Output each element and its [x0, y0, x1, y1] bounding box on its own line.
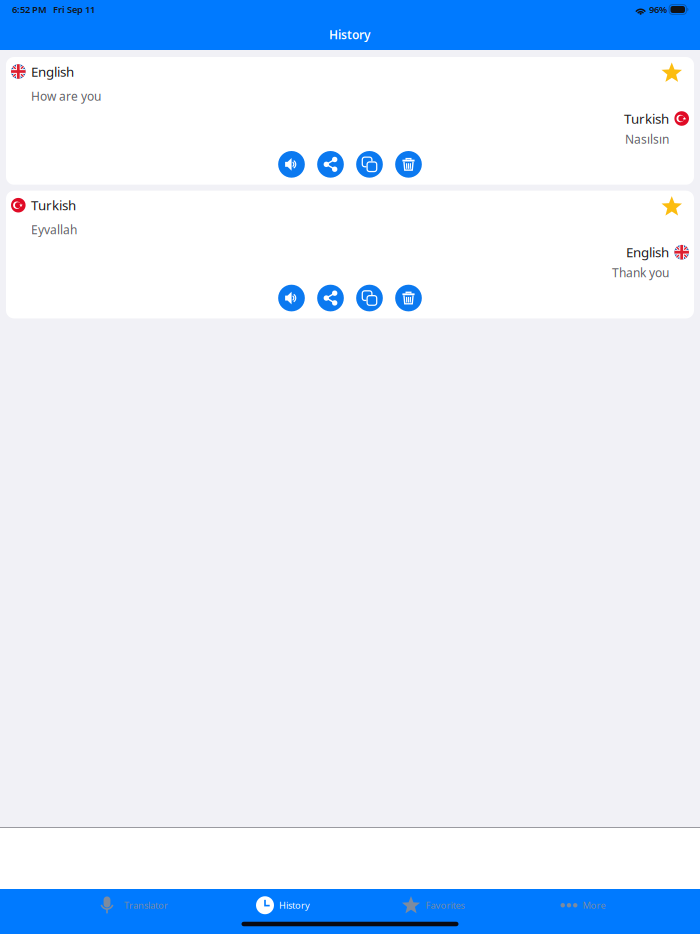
button[interactable]: Copy — [356, 285, 383, 311]
button[interactable]: Play pronunciation — [278, 285, 305, 311]
staticText: Favorites — [425, 899, 464, 911]
staticText: History — [279, 899, 310, 911]
staticText: More — [582, 899, 605, 911]
button[interactable]: History — [208, 889, 358, 922]
staticText: Turkish — [624, 110, 669, 127]
button[interactable]: Copy — [356, 151, 383, 178]
button[interactable]: Favorites — [358, 889, 508, 922]
button[interactable]: Share — [317, 151, 344, 178]
button[interactable]: Favorite — [651, 191, 694, 224]
staticText: Eyvallah — [31, 222, 77, 238]
staticText: How are you — [31, 88, 101, 104]
button[interactable]: More — [508, 889, 658, 922]
button[interactable]: Delete — [395, 151, 422, 178]
staticText: English — [626, 243, 669, 261]
staticText: Thank you — [612, 265, 669, 281]
button[interactable]: Favorite — [651, 57, 694, 90]
staticText: 96% — [649, 3, 667, 16]
staticText: 6:52 PM — [12, 3, 47, 16]
button[interactable]: Delete — [395, 285, 422, 311]
staticText: History — [329, 26, 371, 42]
staticText: Translator — [124, 899, 168, 911]
staticText: Nasılsın — [625, 131, 669, 147]
staticText: Turkish — [31, 196, 76, 214]
button[interactable]: Translator — [58, 889, 208, 922]
staticText: English — [31, 63, 74, 80]
button[interactable]: Play pronunciation — [278, 151, 305, 178]
button[interactable]: Share — [317, 285, 344, 311]
staticText: Fri Sep 11 — [53, 3, 95, 16]
